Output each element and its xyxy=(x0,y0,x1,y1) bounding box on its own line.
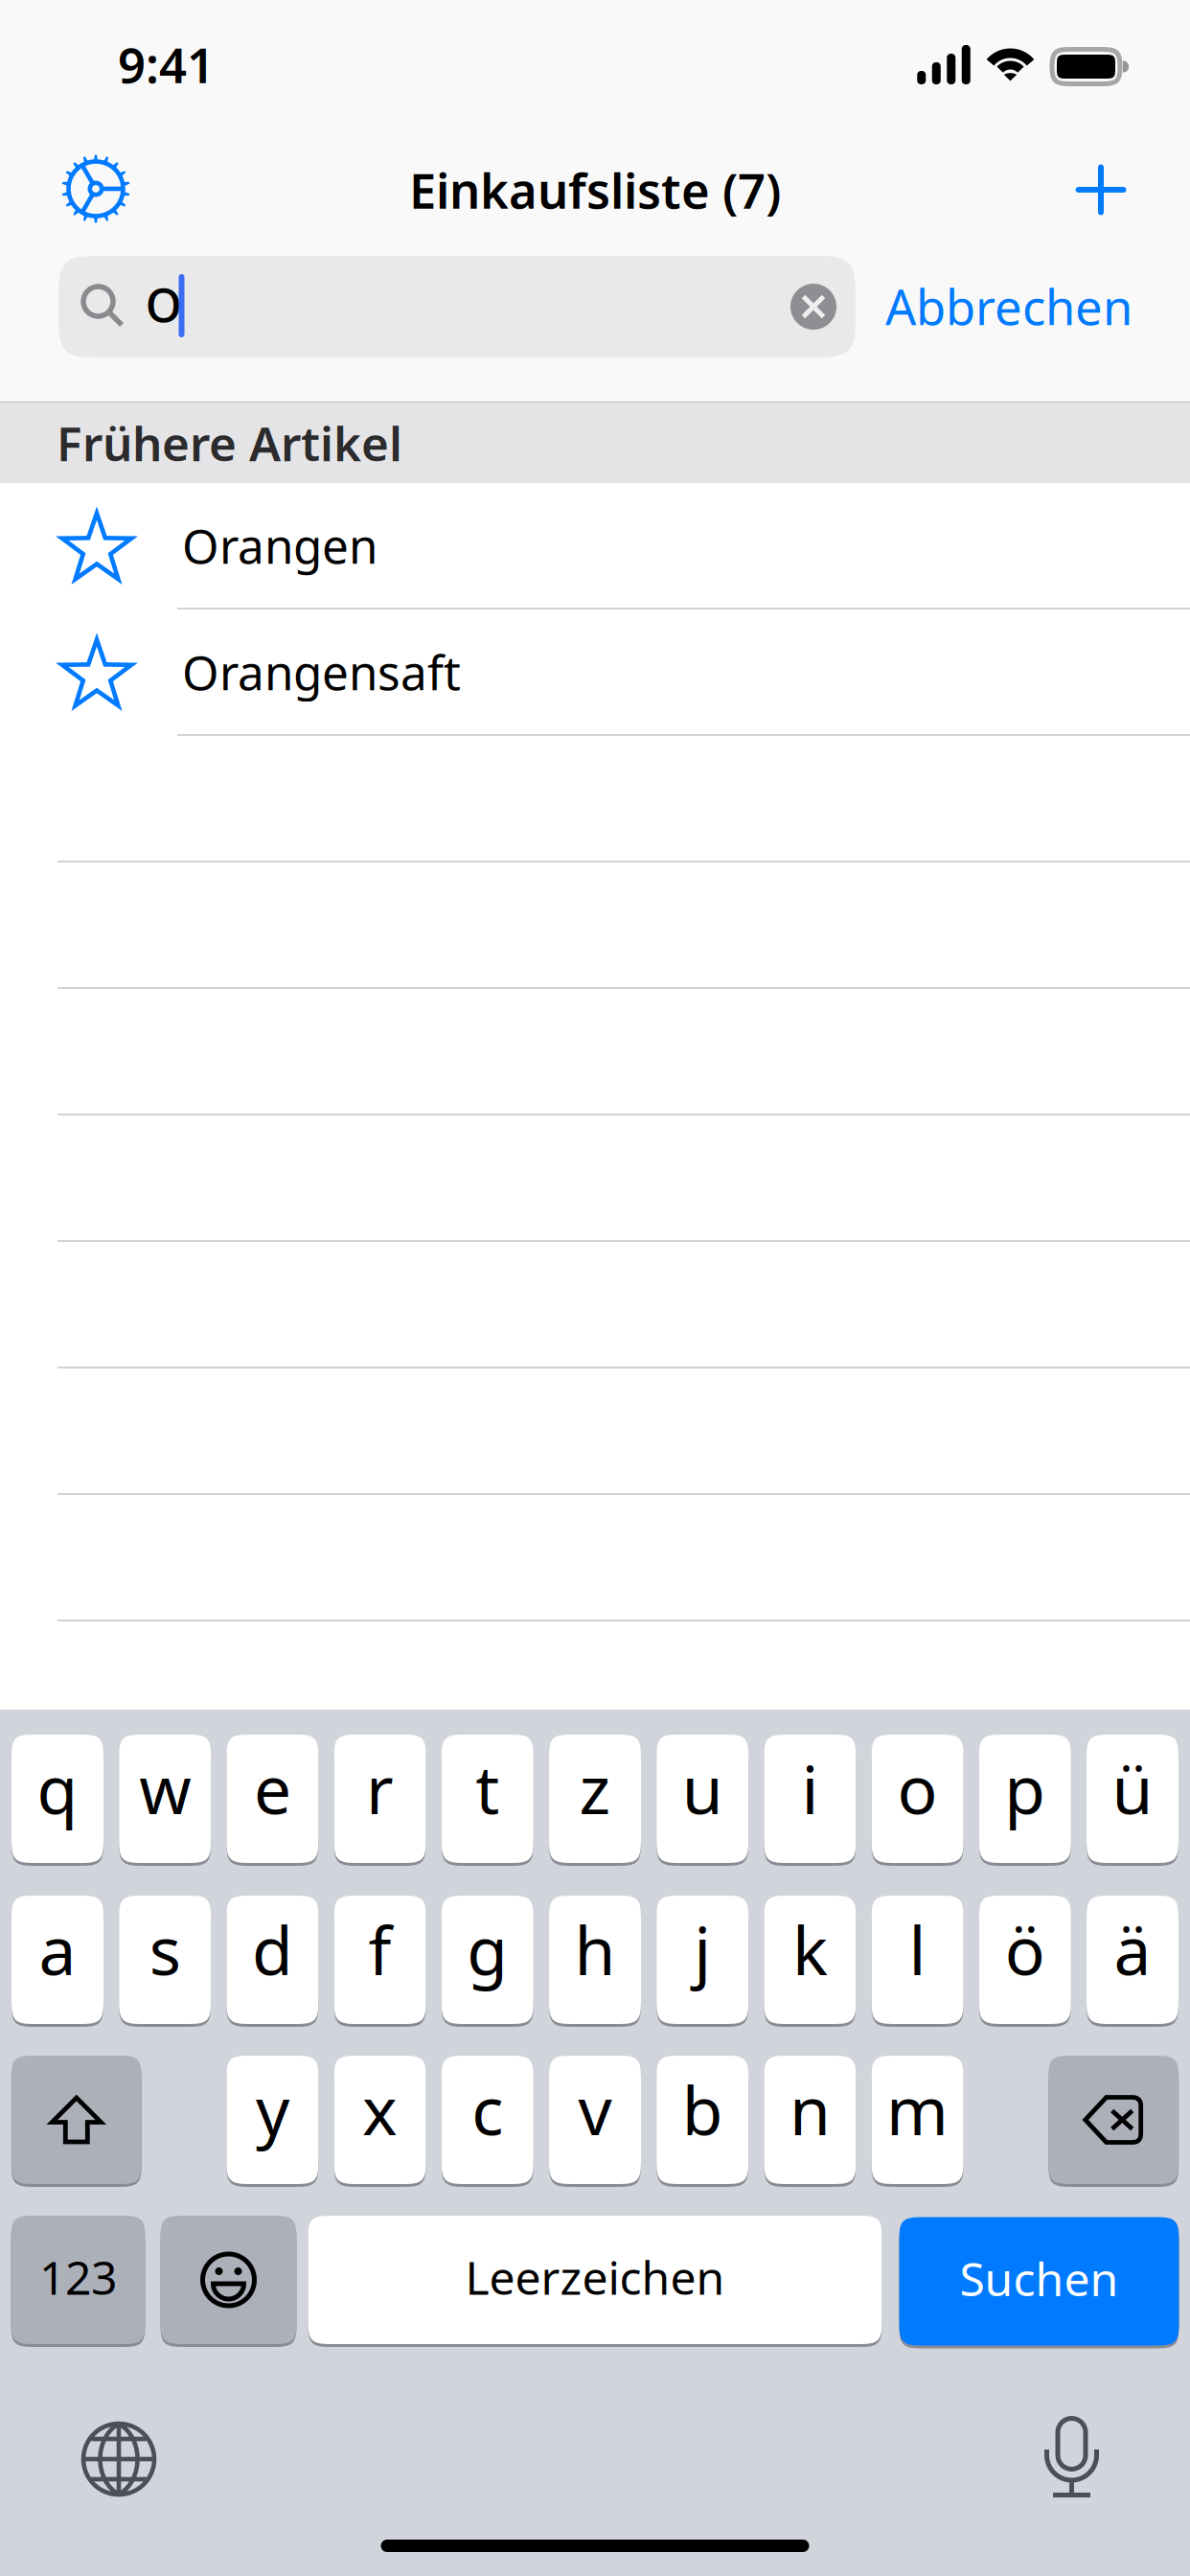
button[interactable]: Orangensaft xyxy=(0,609,1190,736)
button[interactable]: Einstellungen xyxy=(61,154,130,223)
staticText: q xyxy=(37,1744,78,1832)
staticText: l xyxy=(909,1905,926,1993)
staticText: Orangensaft xyxy=(182,640,461,703)
button[interactable]: o xyxy=(872,1735,963,1866)
staticText: 9:41 xyxy=(118,32,215,97)
button[interactable]: e xyxy=(227,1735,318,1866)
staticText: o xyxy=(897,1744,938,1832)
staticText: o xyxy=(145,256,183,340)
staticText: u xyxy=(682,1744,723,1832)
staticText: ö xyxy=(1005,1905,1045,1993)
button[interactable]: Löschen xyxy=(1048,2056,1179,2187)
staticText: f xyxy=(368,1905,391,1993)
staticText: Suchen xyxy=(960,2248,1119,2309)
staticText: ü xyxy=(1112,1744,1153,1832)
button[interactable]: Tastatur wechseln xyxy=(80,2421,157,2497)
staticText: v xyxy=(578,2065,612,2153)
staticText: 123 xyxy=(39,2246,117,2307)
staticText: c xyxy=(472,2065,503,2153)
button[interactable]: u xyxy=(657,1735,748,1866)
button[interactable]: l xyxy=(872,1896,963,2027)
button[interactable]: f xyxy=(334,1896,426,2027)
button[interactable]: Umschalten xyxy=(11,2056,142,2187)
button[interactable]: t xyxy=(442,1735,533,1866)
button[interactable]: Abbrechen xyxy=(885,256,1133,356)
staticText: p xyxy=(1004,1744,1046,1832)
button[interactable]: Suchen xyxy=(899,2216,1179,2347)
staticText: Orangen xyxy=(182,514,378,577)
staticText: y xyxy=(256,2065,289,2153)
staticText: m xyxy=(886,2065,949,2153)
button[interactable]: v xyxy=(549,2056,641,2187)
button[interactable]: k xyxy=(764,1896,856,2027)
staticText: s xyxy=(149,1905,181,1993)
staticText: Abbrechen xyxy=(885,274,1133,338)
staticText: e xyxy=(254,1744,291,1832)
button[interactable]: Leerzeichen xyxy=(308,2216,882,2347)
staticText: r xyxy=(366,1744,394,1832)
button[interactable]: b xyxy=(657,2056,748,2187)
staticText: Leerzeichen xyxy=(465,2246,725,2307)
button[interactable]: 123 xyxy=(11,2216,145,2347)
staticText: i xyxy=(801,1744,819,1832)
staticText: w xyxy=(139,1744,191,1832)
button[interactable]: j xyxy=(657,1896,748,2027)
button[interactable]: ü xyxy=(1087,1735,1179,1866)
staticText: Frühere Artikel xyxy=(57,411,402,474)
button[interactable]: i xyxy=(764,1735,856,1866)
button[interactable]: m xyxy=(872,2056,963,2187)
button[interactable]: w xyxy=(119,1735,211,1866)
button[interactable]: h xyxy=(549,1896,641,2027)
button[interactable]: Emoji xyxy=(160,2216,297,2347)
staticText: d xyxy=(252,1905,293,1993)
staticText: a xyxy=(39,1905,76,1993)
button[interactable]: d xyxy=(227,1896,318,2027)
staticText: z xyxy=(579,1744,611,1832)
button[interactable]: s xyxy=(119,1896,211,2027)
button[interactable]: z xyxy=(549,1735,641,1866)
staticText: Einkaufsliste (7) xyxy=(409,158,781,222)
staticText: t xyxy=(476,1744,499,1832)
button[interactable]: g xyxy=(442,1896,533,2027)
staticText: k xyxy=(792,1905,828,1993)
button[interactable]: Text löschen xyxy=(790,284,836,330)
button[interactable]: q xyxy=(11,1735,103,1866)
button[interactable]: ö xyxy=(979,1896,1071,2027)
button[interactable]: p xyxy=(979,1735,1071,1866)
button[interactable]: x xyxy=(334,2056,426,2187)
button[interactable]: n xyxy=(764,2056,856,2187)
staticText: x xyxy=(362,2065,398,2153)
staticText: b xyxy=(682,2065,723,2153)
button[interactable]: a xyxy=(11,1896,103,2027)
staticText: n xyxy=(789,2065,831,2153)
button[interactable]: ä xyxy=(1087,1896,1179,2027)
button[interactable]: c xyxy=(442,2056,533,2187)
staticText: ä xyxy=(1114,1905,1151,1993)
button[interactable]: Orangen xyxy=(0,483,1190,609)
staticText: h xyxy=(574,1905,616,1993)
button[interactable]: Artikel hinzufügen xyxy=(1070,159,1132,220)
button[interactable]: Diktieren xyxy=(1044,2416,1099,2497)
staticText: g xyxy=(467,1905,508,1993)
button[interactable]: y xyxy=(227,2056,318,2187)
button[interactable]: r xyxy=(334,1735,426,1866)
staticText: j xyxy=(694,1905,711,1993)
